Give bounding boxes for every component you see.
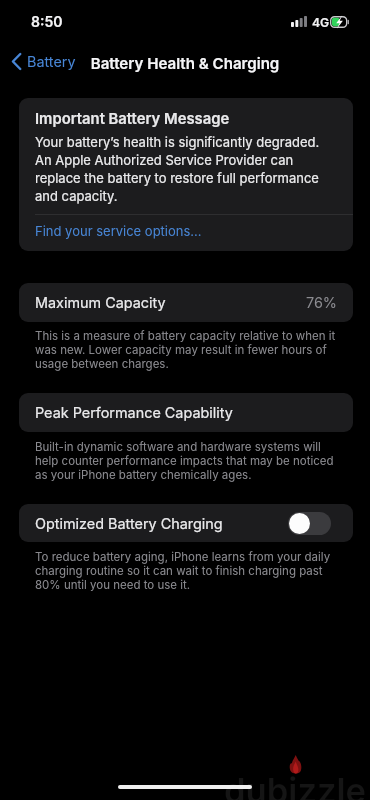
staticText: To reduce battery aging, iPhone learns f… [35, 550, 345, 592]
button[interactable]: Maximum Capacity [19, 283, 353, 322]
staticText: Optimized Battery Charging [35, 515, 223, 532]
button[interactable]: Peak Performance Capability [19, 393, 353, 432]
staticText: dubizzle [224, 769, 367, 800]
staticText: Peak Performance Capability [35, 404, 233, 421]
button[interactable]: Battery [6, 50, 84, 73]
staticText: 8:50 [31, 13, 63, 30]
button[interactable]: Optimized Battery Charging [288, 512, 331, 535]
staticText: This is a measure of battery capacity re… [35, 329, 345, 371]
staticText: Find your service options... [35, 223, 202, 239]
staticText: 4G [312, 15, 330, 30]
button[interactable]: Find your service options... [19, 215, 353, 251]
staticText: 76% [306, 294, 337, 311]
staticText: Battery Health & Charging [0, 54, 370, 72]
staticText: Important Battery Message [35, 110, 230, 128]
button[interactable]: Optimized Battery Charging [19, 504, 353, 542]
staticText: Battery [27, 53, 76, 70]
staticText: Built-in dynamic software and hardware s… [35, 440, 345, 482]
staticText: Your battery’s health is significantly d… [35, 133, 330, 205]
staticText: Maximum Capacity [35, 294, 166, 311]
